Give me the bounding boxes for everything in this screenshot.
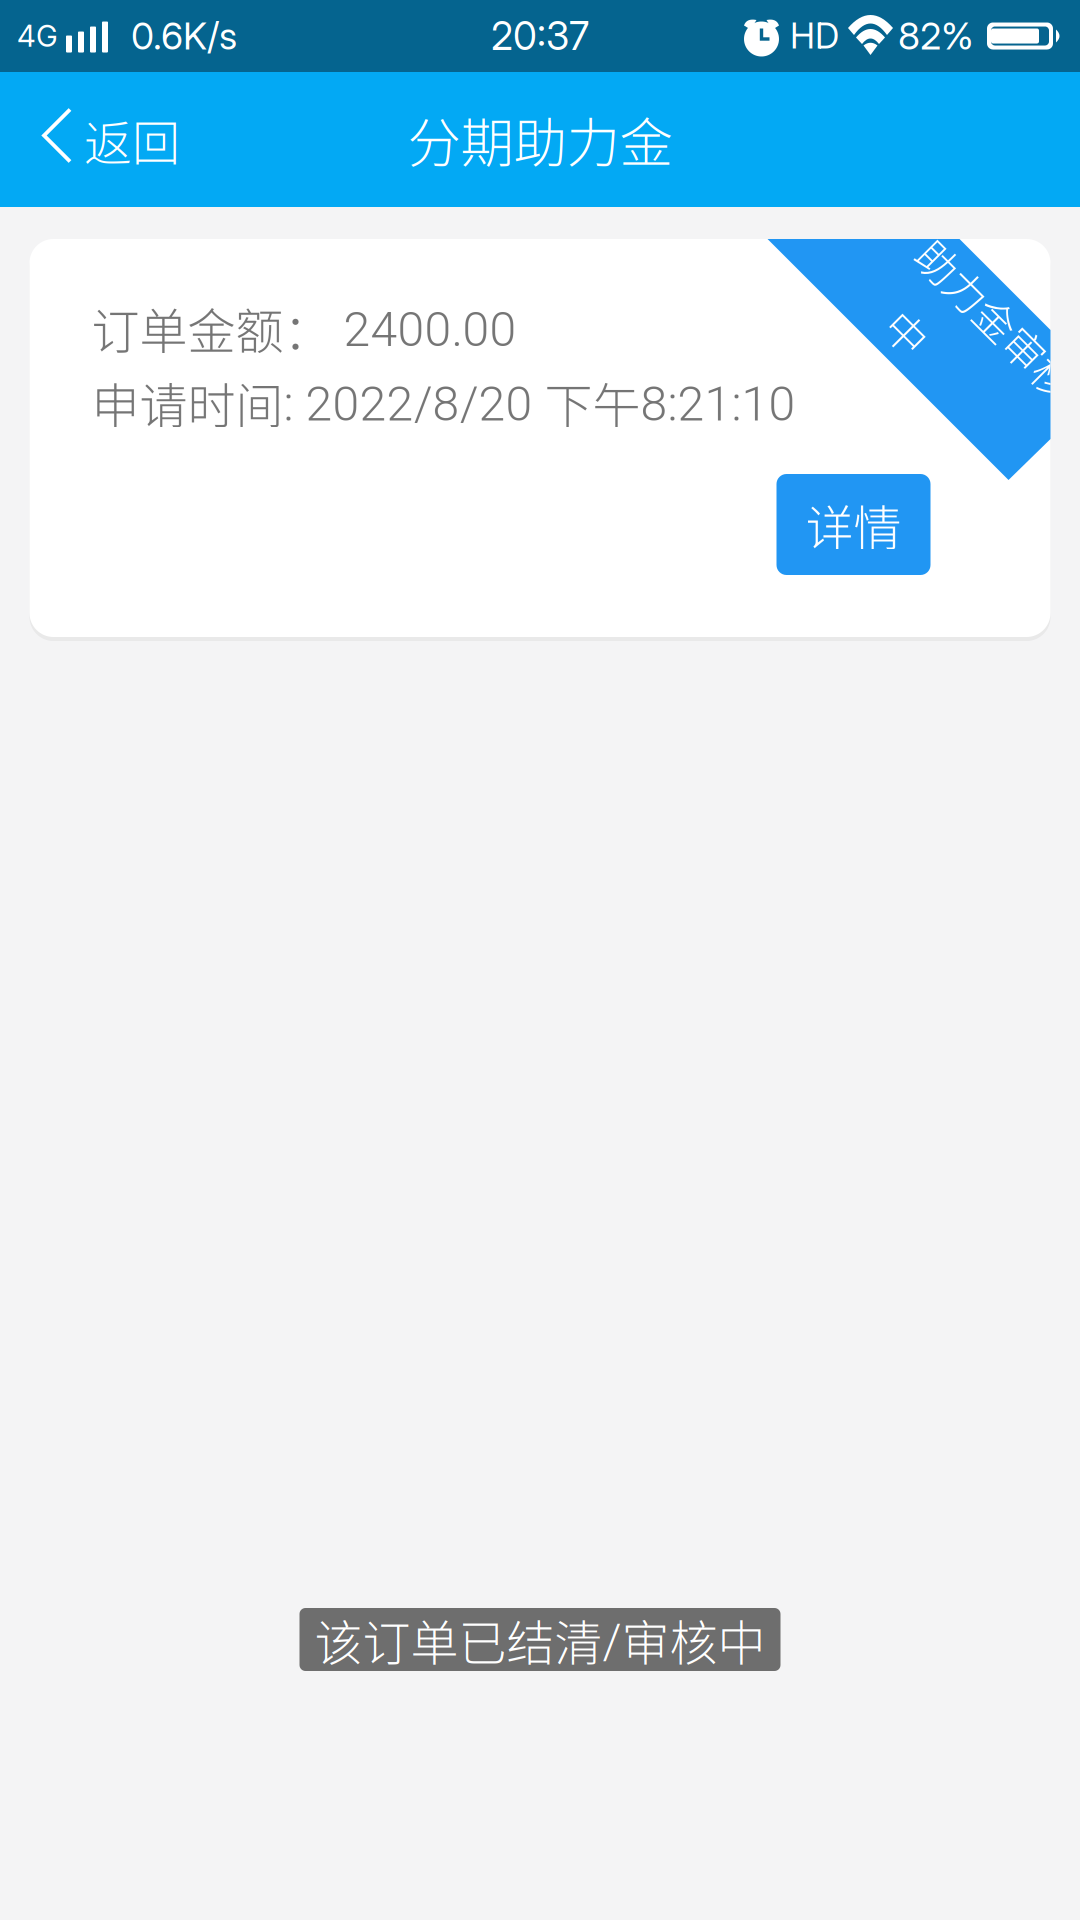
staticText: 82%: [898, 13, 974, 59]
staticText: 申请时间: 2022/8/20 下午8:21:10: [91, 367, 795, 437]
staticText: 订单金额： 2400.00: [91, 293, 516, 362]
staticText: 该订单已结清/审核中: [314, 1605, 765, 1674]
button[interactable]: 详情: [776, 474, 930, 575]
staticText: 详情: [805, 490, 901, 559]
staticText: HD: [790, 15, 839, 57]
staticText: 返回: [84, 105, 180, 174]
staticText: 助力金审核: [867, 289, 1072, 349]
staticText: 4G: [17, 18, 58, 54]
staticText: 20:37: [491, 13, 589, 59]
button[interactable]: 返回: [0, 72, 200, 207]
staticText: 0.6K/s: [131, 13, 237, 59]
staticText: 中: [895, 361, 936, 421]
staticText: 分期助力金: [407, 101, 672, 178]
